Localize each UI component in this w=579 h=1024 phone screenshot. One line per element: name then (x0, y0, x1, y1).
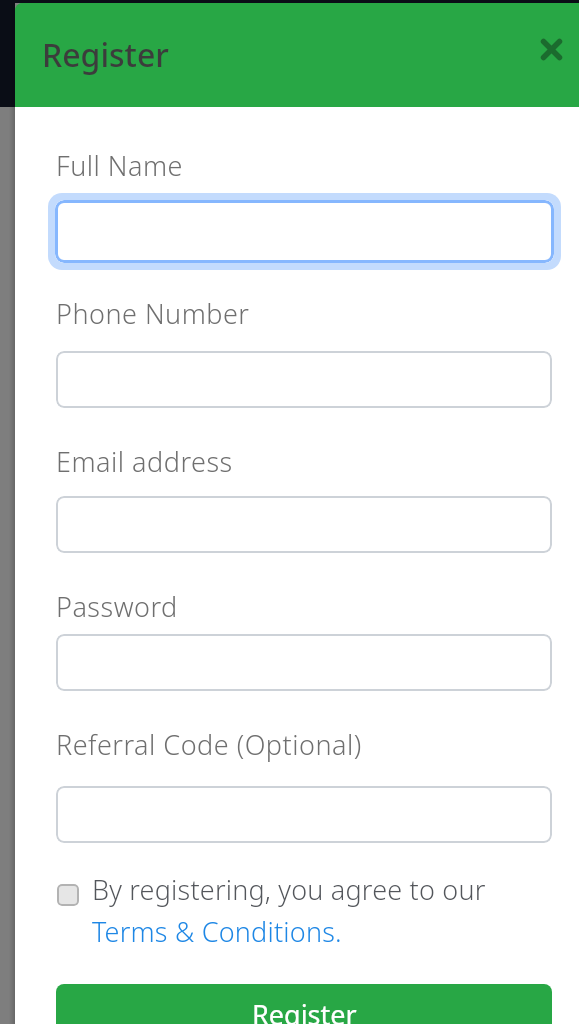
button[interactable] (56, 786, 552, 843)
staticText: Full Name (56, 147, 183, 184)
button[interactable] (541, 39, 562, 60)
button[interactable]: Register (56, 984, 552, 1024)
staticText: Referral Code (Optional) (56, 726, 362, 763)
staticText: Email address (56, 443, 233, 480)
staticText: By registering, you agree to our (92, 871, 486, 908)
button[interactable] (56, 496, 552, 553)
button[interactable] (56, 634, 552, 691)
button[interactable] (55, 200, 554, 263)
staticText: Register (42, 33, 169, 77)
staticText: Register (252, 996, 357, 1024)
button[interactable] (56, 351, 552, 408)
button[interactable] (57, 884, 79, 906)
staticText: Password (56, 588, 178, 625)
staticText: Phone Number (56, 295, 250, 332)
button[interactable]: Terms & Conditions. (92, 913, 342, 950)
